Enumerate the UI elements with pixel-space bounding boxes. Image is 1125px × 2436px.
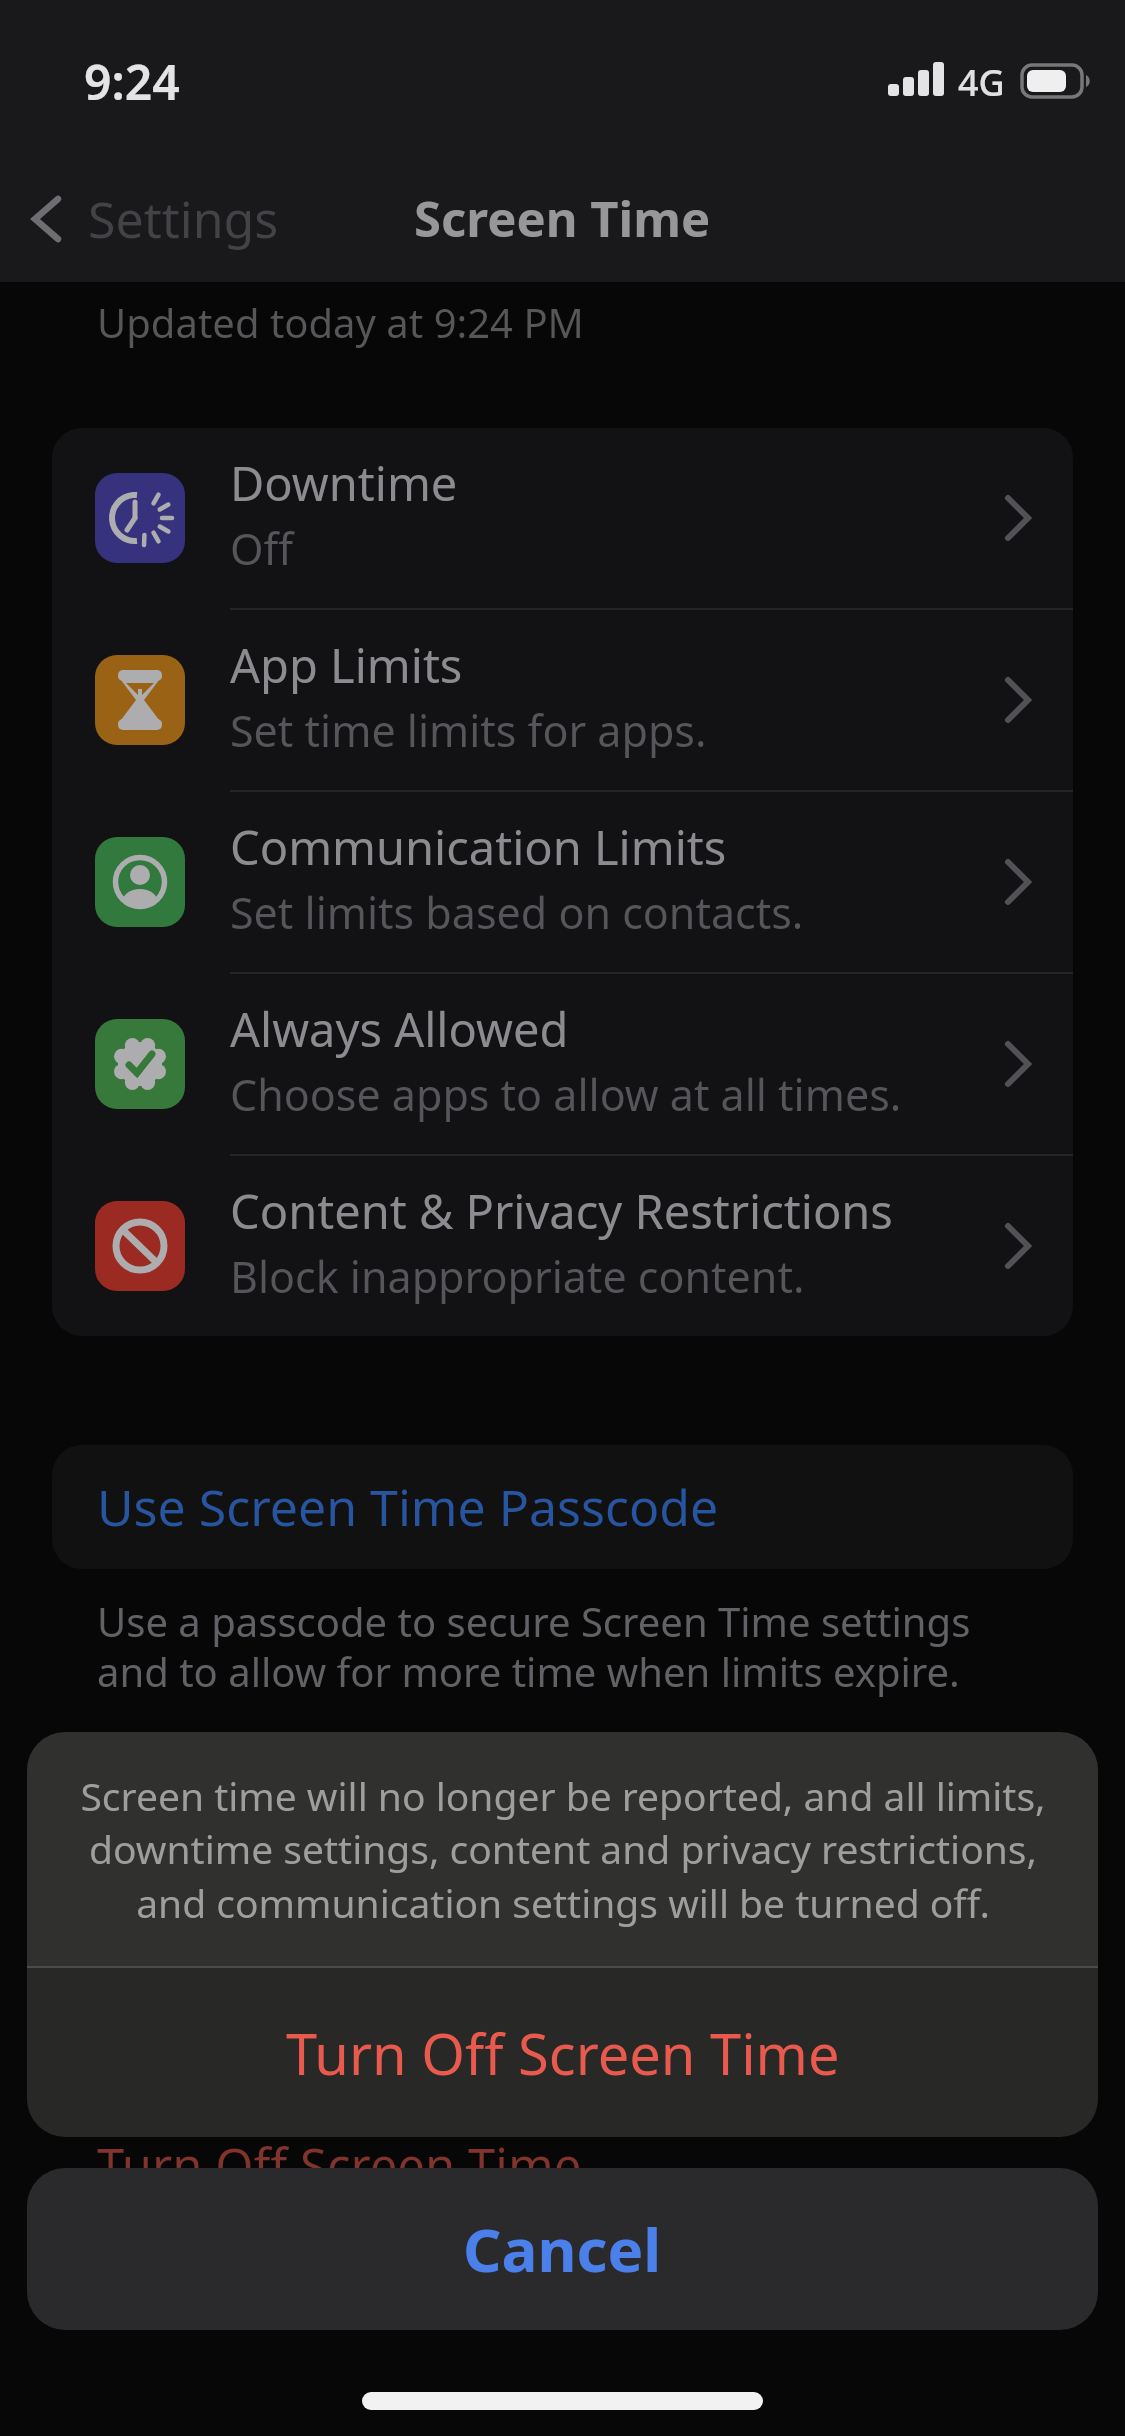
staticText: Set time limits for apps. [230, 701, 707, 760]
staticText: Turn Off Screen Time [286, 2015, 840, 2091]
staticText: Set limits based on contacts. [230, 883, 804, 942]
staticText: Cancel [463, 2208, 662, 2290]
staticText: Always Allowed [230, 997, 569, 1061]
staticText: Use a passcode to secure Screen Time set… [97, 1594, 971, 1699]
staticText: Use Screen Time Passcode [97, 1473, 719, 1541]
button[interactable]: Content & Privacy Restrictions [52, 1156, 1073, 1336]
staticText: Turn Off Screen Time [97, 2132, 582, 2168]
button[interactable]: App Limits [52, 610, 1073, 790]
staticText: Choose apps to allow at all times. [230, 1065, 902, 1124]
staticText: Communication Limits [230, 815, 727, 879]
staticText: Content & Privacy Restrictions [230, 1179, 893, 1243]
staticText: Downtime [230, 451, 458, 515]
staticText: Settings [88, 185, 279, 253]
button[interactable]: Cancel [27, 2168, 1098, 2330]
button[interactable]: Communication Limits [52, 792, 1073, 972]
staticText: 4G [958, 58, 1005, 107]
button[interactable]: Settings [24, 180, 284, 260]
staticText: Block inappropriate content. [230, 1247, 805, 1306]
staticText: 9:24 [84, 49, 180, 114]
staticText: App Limits [230, 633, 463, 697]
button[interactable]: Use Screen Time Passcode [52, 1445, 1073, 1569]
staticText: Updated today at 9:24 PM [97, 295, 584, 349]
button[interactable]: Always Allowed [52, 974, 1073, 1154]
staticText: Screen time will no longer be reported, … [80, 1769, 1046, 1930]
button[interactable]: Turn Off Screen Time [27, 1968, 1098, 2137]
button[interactable]: Downtime [52, 428, 1073, 608]
staticText: Screen Time [414, 185, 711, 252]
staticText: Off [230, 519, 294, 578]
